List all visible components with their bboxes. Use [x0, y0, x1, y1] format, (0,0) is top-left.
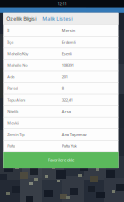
staticText: 108391	[62, 62, 74, 68]
staticText: Mahalle/Köy	[7, 51, 28, 56]
staticText: Erdemli	[62, 39, 76, 45]
staticText: Mahalle No	[7, 62, 27, 68]
button[interactable]: Favorilere ekle	[3, 152, 118, 168]
staticText: 201	[62, 74, 68, 79]
staticText: Mevkii	[7, 120, 19, 126]
staticText: İl	[7, 28, 9, 33]
staticText: Pafta Yok	[62, 143, 77, 149]
staticText: İlçe	[7, 39, 13, 45]
staticText: 8	[62, 86, 64, 91]
staticText: Pafta	[7, 143, 15, 149]
staticText: Mersin	[62, 28, 75, 33]
staticText: Ana Taşınmaz	[62, 132, 87, 137]
staticText: Ada	[7, 74, 14, 79]
staticText: 12:11	[57, 1, 66, 6]
staticText: Malik Listesi	[42, 15, 72, 22]
staticText: 322,41	[62, 97, 73, 102]
button[interactable]: Özellik Bilgisi	[3, 13, 39, 25]
staticText: Özellik Bilgisi	[6, 15, 36, 22]
staticText: Parsel	[7, 86, 18, 91]
staticText: Zemin Tip	[7, 132, 24, 137]
staticText: Favorilere ekle	[48, 157, 74, 163]
staticText: Tapu Alanı	[7, 97, 25, 102]
staticText: Arsa	[62, 109, 71, 114]
staticText: Esenli	[62, 51, 72, 56]
staticText: Nitelik	[7, 109, 18, 114]
button[interactable]: Malik Listesi	[39, 13, 75, 25]
